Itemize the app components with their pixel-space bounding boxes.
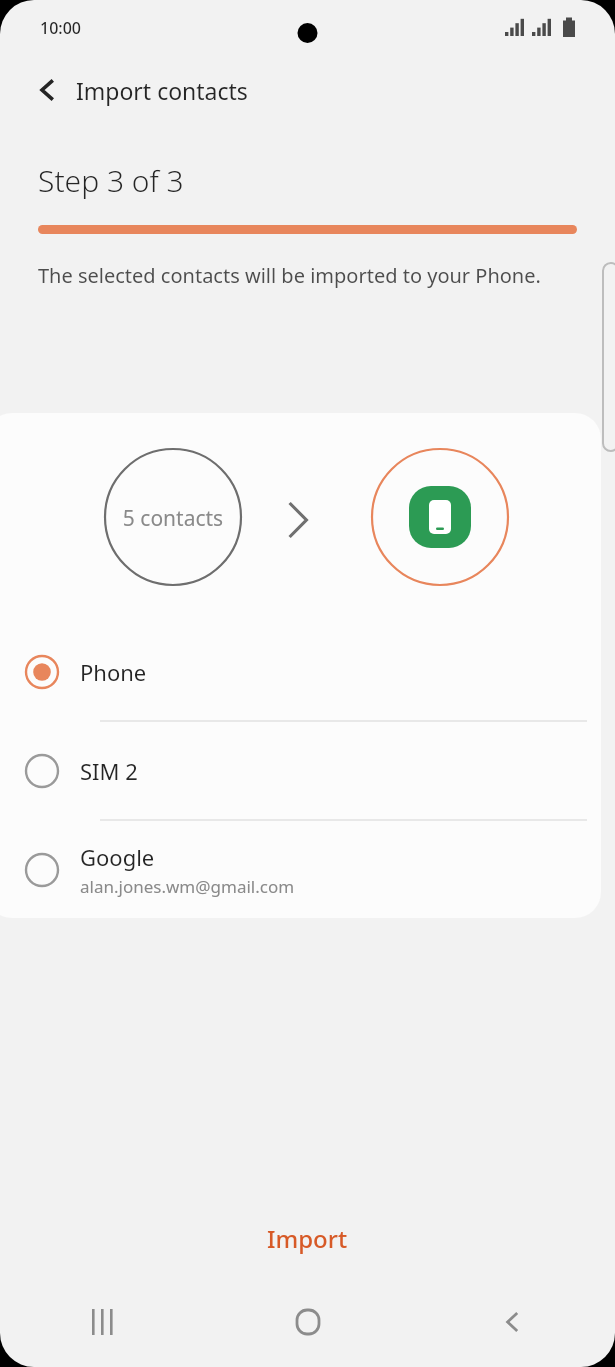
button[interactable]: Google xyxy=(0,821,601,918)
staticText: Phone xyxy=(80,657,147,687)
staticText: The selected contacts will be imported t… xyxy=(38,262,541,289)
staticText: Import xyxy=(267,1222,348,1255)
staticText: Import contacts xyxy=(76,75,248,106)
staticText: 10:00 xyxy=(40,17,81,39)
button[interactable]: Phone xyxy=(0,623,601,720)
staticText: SIM 2 xyxy=(80,756,138,786)
button[interactable]: Back xyxy=(410,1277,615,1367)
staticText: alan.jones.wm@gmail.com xyxy=(80,875,295,898)
staticText: 5 contacts xyxy=(104,504,242,533)
staticText: Step 3 of 3 xyxy=(38,160,184,201)
staticText: Google xyxy=(80,842,155,872)
button[interactable]: Recents xyxy=(0,1277,205,1367)
button[interactable]: Home xyxy=(205,1277,410,1367)
button[interactable]: Back xyxy=(24,66,72,114)
button[interactable]: Import xyxy=(267,1222,348,1255)
button[interactable]: SIM 2 xyxy=(0,722,601,819)
